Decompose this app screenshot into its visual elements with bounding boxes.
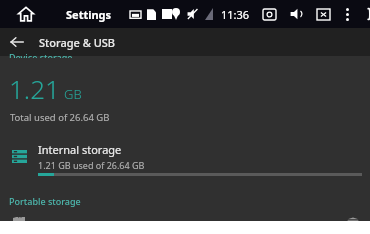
staticText: 1.21 GB used of 26.64 GB [38, 159, 145, 171]
button[interactable]: Eject [336, 217, 370, 221]
button[interactable]: Screenshot [258, 0, 280, 28]
staticText: Internal storage [38, 142, 122, 157]
other: Muted [187, 8, 198, 20]
button[interactable]: Internal storage [0, 139, 370, 176]
other: USB notification [147, 8, 156, 20]
button[interactable]: Volume [285, 0, 307, 28]
button[interactable]: Navigate up [0, 28, 34, 56]
staticText: Device storage [9, 51, 73, 58]
other: Signal [205, 8, 213, 20]
staticText: Settings [66, 7, 112, 22]
staticText: Portable storage [9, 195, 81, 207]
button[interactable]: Back [368, 0, 370, 28]
staticText: Total used of 26.64 GB [10, 111, 110, 124]
staticText: GB [64, 85, 82, 103]
button[interactable]: More options [338, 0, 356, 28]
staticText: 1.21 [9, 71, 60, 106]
staticText: Storage & USB [39, 35, 116, 50]
button[interactable]: Home [8, 0, 44, 28]
button[interactable]: GPS [0, 217, 370, 221]
staticText: 11:36 [221, 7, 250, 22]
other: Location [172, 8, 180, 20]
other: Screenshot notification [130, 9, 141, 20]
button[interactable]: Display [312, 0, 334, 28]
